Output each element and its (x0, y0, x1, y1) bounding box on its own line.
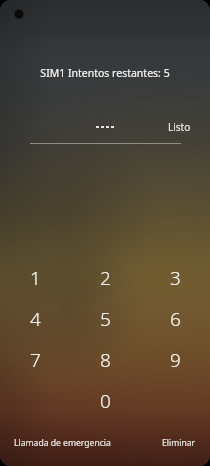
button[interactable]: 1 (0, 265, 70, 286)
button[interactable]: 4 (0, 306, 70, 327)
button[interactable]: 2 (70, 265, 140, 286)
button[interactable]: 3 (140, 265, 210, 286)
staticText: 7 (30, 347, 41, 368)
button[interactable]: 7 (0, 347, 70, 368)
button[interactable]: 8 (70, 347, 140, 368)
button[interactable]: Eliminar (159, 433, 199, 453)
staticText: 8 (100, 347, 111, 368)
staticText: 0 (100, 388, 111, 409)
staticText: SIM1 Intentos restantes: 5 (0, 66, 210, 80)
staticText: 1 (30, 265, 41, 286)
staticText: 9 (170, 347, 181, 368)
staticText: 3 (170, 265, 181, 286)
staticText: 2 (100, 265, 111, 286)
staticText: 6 (170, 306, 181, 327)
staticText: Listo (168, 120, 191, 134)
button[interactable]: Llamada de emergencia (11, 433, 114, 453)
staticText: Eliminar (162, 437, 196, 449)
staticText: 4 (30, 306, 41, 327)
button[interactable]: 9 (140, 347, 210, 368)
staticText: 5 (100, 306, 111, 327)
button[interactable]: Listo (165, 118, 194, 136)
button[interactable]: 6 (140, 306, 210, 327)
button[interactable]: 0 (70, 388, 140, 409)
button[interactable]: 5 (70, 306, 140, 327)
staticText: Llamada de emergencia (14, 437, 111, 449)
